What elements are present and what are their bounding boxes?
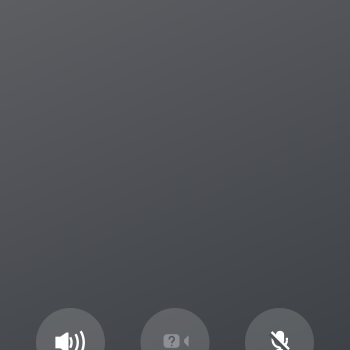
button[interactable]: Speaker xyxy=(36,308,105,350)
button[interactable]: Turn Camera On xyxy=(140,308,209,350)
button[interactable]: Unmute xyxy=(245,308,314,350)
